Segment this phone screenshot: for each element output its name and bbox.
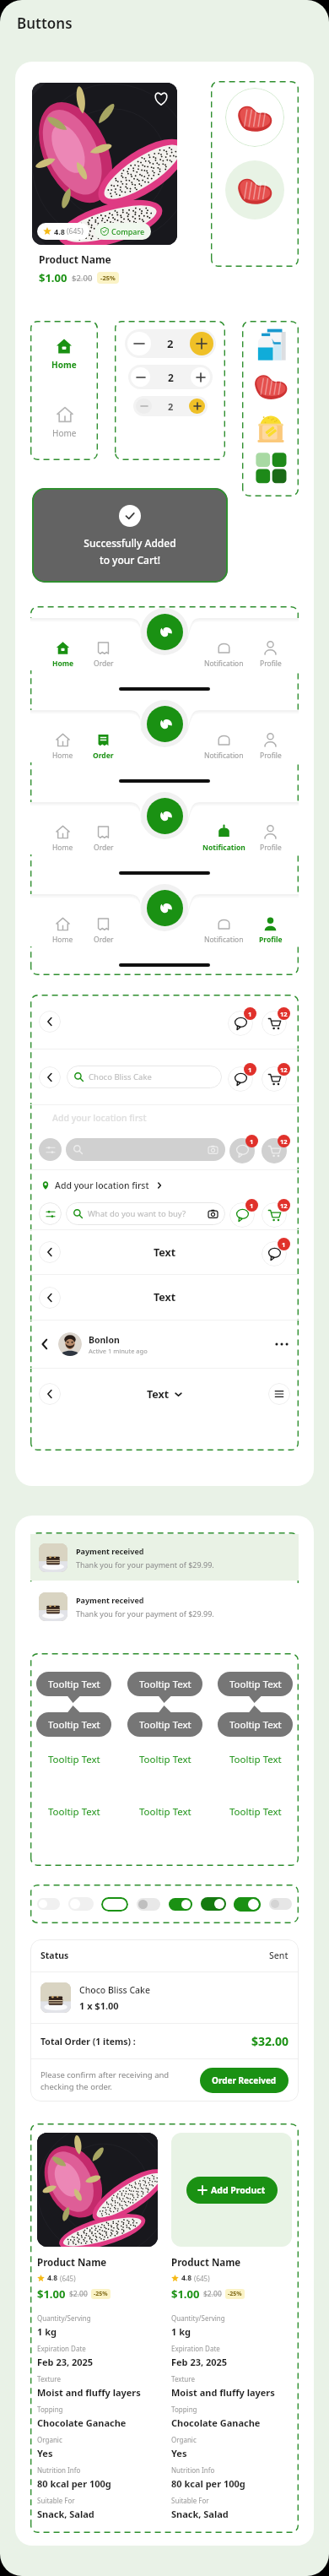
button[interactable]: Notification (196, 825, 252, 853)
staticText: $2.00 (72, 273, 93, 284)
button[interactable]: Meat category (225, 88, 284, 147)
button[interactable]: Add (147, 890, 183, 926)
button[interactable]: Favourite (30, 81, 179, 296)
staticText: Nutrition Info (37, 2465, 81, 2475)
button[interactable]: Choco Bliss Cake (74, 1066, 214, 1088)
button[interactable]: Toggle off (37, 1898, 60, 1910)
button[interactable]: Chat (228, 1066, 253, 1092)
button[interactable]: Notification (196, 917, 252, 945)
button[interactable]: Home (46, 825, 79, 853)
button[interactable]: Tooltip Text (127, 1751, 202, 1768)
button[interactable]: Back (39, 1241, 61, 1263)
button[interactable]: Tooltip Text (127, 1803, 202, 1820)
button[interactable]: Chat (228, 1011, 253, 1036)
button[interactable]: Add (147, 706, 183, 742)
button[interactable]: Tooltip Text (218, 1706, 293, 1737)
button[interactable]: Toggle on (201, 1897, 226, 1911)
button[interactable]: Chat (229, 1202, 255, 1228)
button[interactable]: Categories (253, 449, 289, 485)
button[interactable]: Toggle off (101, 1897, 128, 1912)
button[interactable]: Successfully Added (32, 488, 228, 583)
button[interactable]: Tooltip Text (36, 1706, 111, 1737)
staticText: Add Product (211, 2184, 266, 2196)
staticText: Payment received (76, 1546, 144, 1556)
button[interactable]: Tooltip Text (218, 1803, 293, 1820)
button[interactable]: Home (46, 733, 79, 761)
button[interactable]: Home (49, 403, 80, 442)
button[interactable]: Order Received (212, 2074, 277, 2086)
button[interactable]: Order (87, 641, 120, 669)
staticText: Nutrition Info (171, 2465, 215, 2475)
staticText: Bonlon (89, 1334, 120, 1346)
button[interactable]: Toggle on (169, 1898, 192, 1911)
button[interactable]: Home (48, 334, 80, 374)
button[interactable]: More (273, 1336, 290, 1353)
button[interactable]: Decrease (136, 399, 152, 414)
button[interactable]: Increase (189, 399, 205, 414)
button[interactable]: Add Product (198, 2184, 266, 2196)
staticText: Home (52, 843, 73, 853)
button[interactable]: Notification (196, 641, 252, 669)
button[interactable]: Meat (253, 368, 289, 404)
button[interactable]: Toggle off (269, 1898, 292, 1910)
button[interactable]: What do you want to buy? (73, 1202, 218, 1225)
button[interactable]: Profile (254, 733, 287, 761)
button[interactable]: Order (87, 825, 120, 853)
button[interactable]: Cart (262, 1138, 287, 1163)
button[interactable]: Home (46, 641, 79, 669)
staticText: Sent (269, 1950, 289, 1961)
button[interactable]: Increase (190, 332, 213, 355)
button[interactable]: Chat (262, 1241, 287, 1266)
button[interactable]: Add your location first (41, 1180, 163, 1191)
button[interactable]: Chat (229, 1138, 255, 1163)
button[interactable]: Back (39, 1011, 61, 1033)
button[interactable]: Tooltip Text (36, 1803, 111, 1820)
staticText: Add your location first (52, 1112, 147, 1124)
staticText: Please confirm after receiving and check… (40, 2069, 170, 2092)
button[interactable]: Profile (254, 825, 287, 853)
button[interactable]: Toggle on (234, 1897, 261, 1912)
button[interactable]: Toggle off (68, 1897, 94, 1911)
button[interactable]: Add (147, 798, 183, 834)
button[interactable]: Toggle off (137, 1898, 160, 1911)
button[interactable]: Back (39, 1287, 61, 1309)
button[interactable]: Dairy (253, 328, 289, 363)
button[interactable]: Cart (262, 1066, 287, 1092)
button[interactable]: Cart (262, 1202, 287, 1228)
button[interactable]: Payment received (39, 1583, 290, 1630)
staticText: Text (147, 1387, 170, 1402)
button[interactable]: Tooltip Text (127, 1672, 202, 1703)
button[interactable]: Back (39, 1383, 61, 1405)
staticText: 2 (167, 336, 174, 351)
button[interactable]: Payment received (39, 1534, 290, 1581)
button[interactable]: Flour (253, 409, 289, 444)
staticText: Order (94, 935, 114, 945)
button[interactable]: Back (39, 1338, 51, 1350)
button[interactable]: Menu (268, 1383, 290, 1405)
button[interactable]: Cart (262, 1011, 287, 1036)
button[interactable]: Back (39, 1066, 61, 1088)
button[interactable]: Text (147, 1387, 182, 1402)
button[interactable]: Tooltip Text (36, 1672, 111, 1703)
button[interactable]: Tooltip Text (127, 1706, 202, 1737)
button[interactable]: Increase (191, 367, 210, 387)
button[interactable]: Tooltip Text (218, 1672, 293, 1703)
button[interactable]: Profile (254, 917, 287, 945)
staticText: 1 (250, 1137, 254, 1146)
button[interactable]: Add (147, 614, 183, 650)
button[interactable]: Meat category selected (225, 160, 284, 220)
button[interactable]: Tooltip Text (36, 1751, 111, 1768)
button[interactable]: Notification (196, 733, 252, 761)
staticText: 12 (280, 1010, 288, 1018)
button[interactable]: Decrease (127, 332, 151, 355)
button[interactable]: Tooltip Text (218, 1751, 293, 1768)
button[interactable]: Order (87, 733, 120, 761)
button[interactable]: Order (87, 917, 120, 945)
button[interactable]: Decrease (131, 367, 150, 387)
button[interactable]: Home (46, 917, 79, 945)
button[interactable]: Profile (254, 641, 287, 669)
button[interactable]: Compare (100, 226, 145, 236)
button[interactable]: Filter (39, 1202, 62, 1225)
button[interactable]: 4.8 (43, 226, 84, 236)
button[interactable]: Favourite (154, 91, 169, 106)
